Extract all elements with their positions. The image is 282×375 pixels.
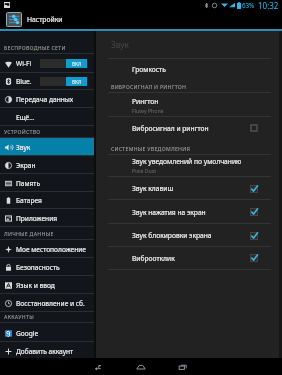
staticText: ЛИЧНЫЕ ДАННЫЕ	[4, 230, 54, 237]
button[interactable]: Звук уведомлений по умолчанию	[96, 154, 282, 177]
staticText: Звук нажатия на экран	[132, 208, 206, 217]
button[interactable]: Звук нажатия на экран	[96, 200, 282, 224]
staticText: ВИБРОСИГНАЛ И РИНГТОН	[111, 83, 187, 90]
staticText: Звук	[16, 143, 31, 152]
staticText: УСТРОЙСТВО	[4, 128, 41, 135]
button[interactable]: Google	[0, 324, 94, 342]
button[interactable]: Громкость	[96, 59, 282, 79]
button[interactable]: Blue.	[0, 72, 94, 90]
button[interactable]: Восстановление и сб.	[0, 294, 94, 312]
staticText: Ещё...	[16, 113, 35, 122]
staticText: Вибросигнал и рингтон	[132, 124, 209, 133]
button[interactable]: Звук блокировки экрана	[96, 224, 282, 247]
staticText: БЕСПРОВОДНЫЕ СЕТИ	[4, 44, 66, 51]
button[interactable]: Back	[78, 358, 120, 375]
staticText: ВКЛ	[72, 79, 82, 85]
staticText: Мое местоположение	[16, 245, 86, 254]
button[interactable]: Безопасность	[0, 258, 94, 276]
button[interactable]: Язык и ввод	[0, 276, 94, 294]
staticText: СИСТЕМНЫЕ УВЕДОМЛЕНИЯ	[111, 145, 191, 152]
staticText: Звук	[111, 39, 129, 50]
button[interactable]: Рингтон	[96, 93, 282, 117]
staticText: Flutey Phone	[132, 107, 164, 114]
button[interactable]: Виброотклик	[96, 246, 282, 270]
button[interactable]: Звук клавиш	[96, 177, 282, 200]
button[interactable]: Home	[120, 358, 162, 375]
staticText: Google	[16, 329, 39, 338]
staticText: 63%	[242, 1, 255, 9]
staticText: Язык и ввод	[16, 281, 55, 290]
button[interactable]: Память	[0, 174, 94, 192]
button[interactable]: Экран	[0, 156, 94, 174]
staticText: Звук уведомлений по умолчанию	[132, 157, 242, 166]
staticText: АККАУНТЫ	[4, 313, 34, 320]
staticText: Восстановление и сб.	[16, 299, 85, 308]
button[interactable]: Звук	[0, 138, 94, 156]
staticText: Blue.	[16, 77, 32, 86]
staticText: 10:32	[258, 0, 279, 10]
staticText: Звук блокировки экрана	[132, 231, 212, 240]
staticText: ВКЛ	[72, 61, 82, 67]
button[interactable]: Мое местоположение	[0, 240, 94, 258]
staticText: Приложения	[16, 214, 58, 223]
button[interactable]: Settings	[6, 12, 22, 27]
staticText: Pixie Dust	[132, 167, 157, 174]
button[interactable]: Передача данных	[0, 90, 94, 108]
staticText: Батарея	[16, 196, 42, 205]
staticText: Громкость	[132, 65, 166, 74]
staticText: Безопасность	[16, 263, 60, 272]
staticText: Виброотклик	[132, 254, 175, 263]
staticText: Передача данных	[16, 95, 74, 104]
staticText: Звук клавиш	[132, 184, 174, 193]
staticText: Добавить аккаунт	[16, 347, 74, 356]
button[interactable]: Приложения	[0, 209, 94, 227]
button[interactable]: Ещё...	[0, 108, 94, 126]
button[interactable]: Батарея	[0, 191, 94, 209]
button[interactable]: Добавить аккаунт	[0, 342, 94, 360]
button[interactable]: Recents	[162, 358, 204, 375]
staticText: Рингтон	[132, 97, 159, 106]
button[interactable]: Вибросигнал и рингтон	[96, 117, 282, 139]
staticText: Настройки	[27, 15, 63, 24]
staticText: Память	[16, 179, 41, 188]
staticText: Wi-Fi	[16, 59, 32, 68]
button[interactable]: Wi-Fi	[0, 54, 94, 73]
staticText: Экран	[16, 161, 36, 170]
